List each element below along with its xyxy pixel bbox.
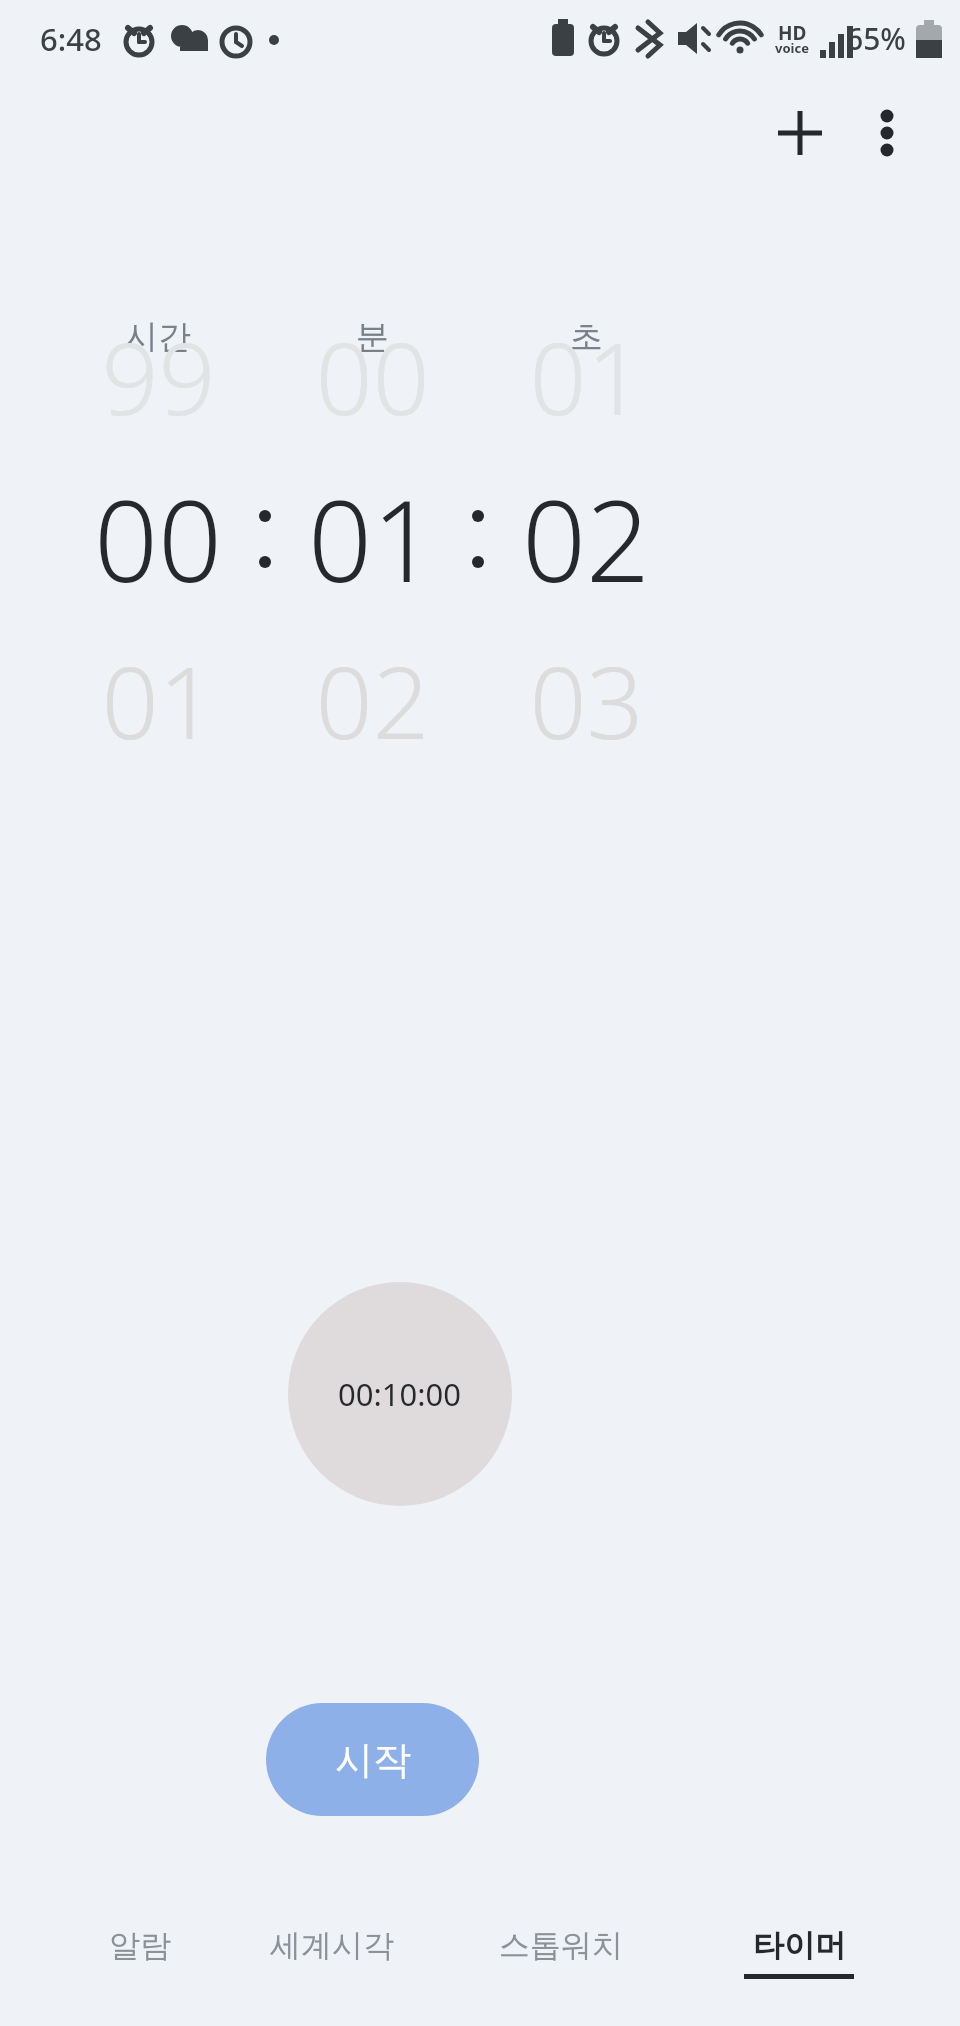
- button[interactable]: Add preset timer: [764, 97, 836, 169]
- button[interactable]: 시작: [266, 1703, 479, 1816]
- button[interactable]: Minutes picker: [262, 300, 482, 800]
- button[interactable]: 스톱워치: [451, 1926, 671, 2010]
- staticText: 시간: [125, 316, 191, 358]
- staticText: 6:48: [40, 18, 102, 60]
- staticText: 분: [356, 316, 389, 358]
- staticText: 알람: [109, 1926, 171, 1965]
- staticText: 타이머: [753, 1926, 846, 1965]
- button[interactable]: 00:10:00: [288, 1282, 512, 1506]
- staticText: 02: [315, 632, 430, 768]
- staticText: 00: [94, 462, 222, 615]
- staticText: 세계시각: [270, 1926, 394, 1965]
- staticText: 초: [570, 316, 603, 358]
- button[interactable]: Hours picker: [48, 300, 268, 800]
- staticText: 02: [522, 462, 650, 615]
- staticText: 00: [315, 308, 430, 444]
- staticText: 03: [529, 632, 644, 768]
- staticText: 99: [101, 308, 216, 444]
- button[interactable]: 타이머: [689, 1926, 909, 2010]
- staticText: 65%: [846, 18, 906, 59]
- staticText: 01: [529, 308, 644, 444]
- staticText: 00:10:00: [338, 1373, 462, 1415]
- staticText: 시작: [335, 1736, 411, 1784]
- button[interactable]: More options: [851, 97, 923, 169]
- staticText: voice: [775, 39, 809, 57]
- staticText: 01: [308, 462, 436, 615]
- button[interactable]: Seconds picker: [476, 300, 696, 800]
- staticText: 01: [101, 632, 216, 768]
- staticText: HD: [778, 20, 807, 46]
- button[interactable]: 알람: [30, 1926, 250, 2010]
- button[interactable]: 세계시각: [222, 1926, 442, 2010]
- staticText: 스톱워치: [499, 1926, 623, 1965]
